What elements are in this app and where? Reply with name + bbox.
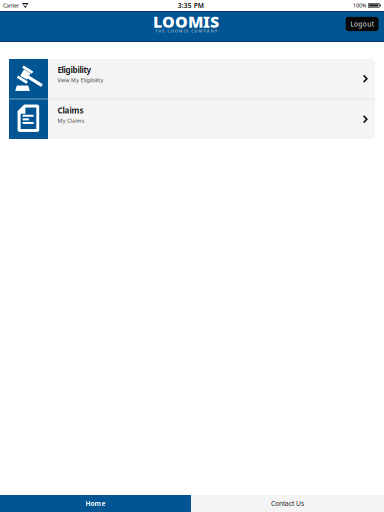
staticText: 100% <box>353 2 366 9</box>
staticText: Claims <box>57 105 83 116</box>
staticText: LOOMIS <box>153 11 219 32</box>
button[interactable]: Logout <box>346 17 378 31</box>
staticText: Eligibility <box>57 64 91 75</box>
button[interactable]: Home <box>0 495 191 512</box>
staticText: Home <box>85 499 105 508</box>
staticText: View My Eligibility <box>57 77 103 84</box>
button[interactable]: Eligibility <box>9 59 375 98</box>
staticText: THE LOOMIS COMPANY <box>155 28 217 34</box>
button[interactable]: Contact Us <box>191 495 384 512</box>
button[interactable]: Claims <box>9 99 375 139</box>
staticText: My Claims <box>57 117 85 124</box>
staticText: Logout <box>350 20 374 28</box>
staticText: 3:35 PM <box>178 1 204 10</box>
staticText: Carrier <box>3 2 19 9</box>
staticText: Contact Us <box>271 499 304 508</box>
